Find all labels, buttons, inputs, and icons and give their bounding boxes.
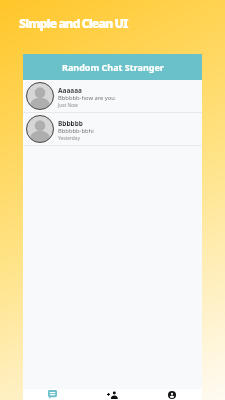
button[interactable]: Bbbbbb xyxy=(23,113,202,145)
button[interactable]: Random Chat Stranger xyxy=(23,54,202,80)
staticText: Bbbbbb-how are you xyxy=(58,94,115,102)
button[interactable]: Aaaaaa xyxy=(23,80,202,112)
staticText: Random Chat Stranger xyxy=(62,61,164,73)
staticText: Simple and Clean UI xyxy=(19,15,128,32)
button[interactable]: Profile xyxy=(142,389,202,400)
staticText: Bbbbbb xyxy=(58,119,83,128)
staticText: Just Now xyxy=(58,102,78,109)
button[interactable]: Chats xyxy=(23,389,82,400)
staticText: Bbbbbb-bbhi xyxy=(58,127,94,135)
staticText: Aaaaaa xyxy=(58,86,82,95)
button[interactable]: Add friend xyxy=(82,389,142,400)
staticText: Yesterday xyxy=(58,135,80,142)
